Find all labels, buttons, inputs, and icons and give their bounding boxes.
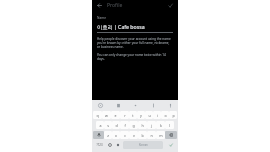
button[interactable]: Back [95,1,104,10]
staticText: y [140,113,142,118]
staticText: v [133,133,135,138]
button[interactable]: o [161,111,169,119]
button[interactable]: j [147,121,156,129]
staticText: ?123 [96,143,103,147]
button[interactable]: Voice input [166,101,174,109]
button[interactable]: r [120,111,129,119]
staticText: o [164,113,167,118]
staticText: Name [97,16,106,20]
staticText: 이효리 | Cafe bossa [97,23,145,30]
button[interactable]: p [169,111,177,119]
button[interactable]: Backspace [165,131,177,139]
button[interactable]: x [112,131,120,139]
button[interactable]: Space [123,141,163,149]
button[interactable]: z [104,131,112,139]
button[interactable]: f [120,121,129,129]
staticText: q [96,113,99,118]
staticText: r [124,113,126,118]
staticText: l [169,123,170,128]
staticText: b [141,133,144,138]
staticText: w [105,113,108,118]
button[interactable]: a [96,121,104,129]
staticText: i [157,113,158,118]
button[interactable]: g [129,121,138,129]
staticText: c [124,133,126,138]
button[interactable]: b [138,131,147,139]
button[interactable]: m [156,131,165,139]
button[interactable]: Change keyboard [114,141,122,149]
staticText: f [124,123,126,128]
staticText: g [132,123,135,128]
button[interactable]: Enter [164,141,177,149]
button[interactable]: Settings [131,101,139,109]
staticText: a [99,123,102,128]
button[interactable]: q [93,111,102,119]
staticText: n [150,133,153,138]
button[interactable]: ?123 [93,141,106,149]
staticText: h [141,123,144,128]
button[interactable]: Clipboard [114,101,122,109]
button[interactable]: Shift [93,131,104,139]
staticText: u [148,113,151,118]
button[interactable]: k [156,121,165,129]
button[interactable]: y [137,111,145,119]
staticText: Profile [107,2,123,9]
button[interactable]: Search [96,101,104,109]
staticText: s [107,123,109,128]
staticText: k [160,123,162,128]
staticText: t [132,113,134,118]
button[interactable]: Emoji [106,141,114,149]
button[interactable]: More [149,101,157,109]
staticText: d [115,123,118,128]
staticText: m [159,133,163,138]
staticText: Korean [139,143,148,147]
button[interactable]: d [112,121,120,129]
button[interactable]: c [120,131,129,139]
staticText: j [151,123,152,128]
button[interactable]: l [165,121,174,129]
staticText: Help people discover your account using … [97,37,173,49]
button[interactable]: t [129,111,137,119]
button[interactable]: v [129,131,138,139]
staticText: You can only change your name twice with… [97,53,173,61]
button[interactable]: u [145,111,153,119]
button[interactable]: e [111,111,120,119]
staticText: e [114,113,117,118]
staticText: z [107,133,109,138]
button[interactable]: Done [166,1,175,10]
staticText: p [172,113,175,118]
button[interactable]: 이효리 | Cafe bossa [97,23,173,33]
button[interactable]: i [153,111,161,119]
button[interactable]: w [102,111,111,119]
button[interactable]: s [104,121,112,129]
staticText: x [115,133,117,138]
button[interactable]: n [147,131,156,139]
button[interactable]: h [138,121,147,129]
